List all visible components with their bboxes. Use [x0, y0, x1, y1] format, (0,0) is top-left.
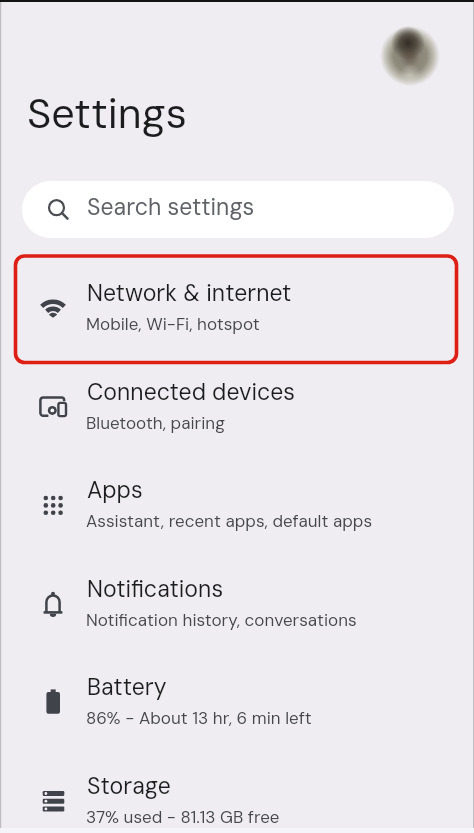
button[interactable]: Search settings: [22, 181, 454, 238]
staticText: Apps: [87, 475, 143, 505]
button[interactable]: Connected devices: [0, 358, 474, 457]
button[interactable]: Network & internet: [0, 259, 474, 358]
staticText: Notification history, conversations: [86, 609, 357, 631]
button[interactable]: Storage: [0, 752, 474, 833]
staticText: Bluetooth, pairing: [86, 412, 225, 434]
staticText: Connected devices: [87, 377, 295, 407]
staticText: Storage: [87, 771, 171, 801]
button[interactable]: Notifications: [0, 555, 474, 654]
button[interactable]: Battery: [0, 653, 474, 752]
staticText: Settings: [27, 87, 187, 141]
button[interactable]: Apps: [0, 456, 474, 555]
staticText: Notifications: [87, 574, 224, 604]
staticText: Network & internet: [87, 278, 292, 308]
staticText: Battery: [87, 672, 167, 702]
staticText: Mobile, Wi-Fi, hotspot: [86, 313, 260, 335]
staticText: 86% - About 13 hr, 6 min left: [86, 707, 312, 729]
staticText: Search settings: [87, 192, 255, 222]
staticText: 37% used - 81.13 GB free: [86, 806, 280, 828]
staticText: Assistant, recent apps, default apps: [86, 510, 373, 532]
